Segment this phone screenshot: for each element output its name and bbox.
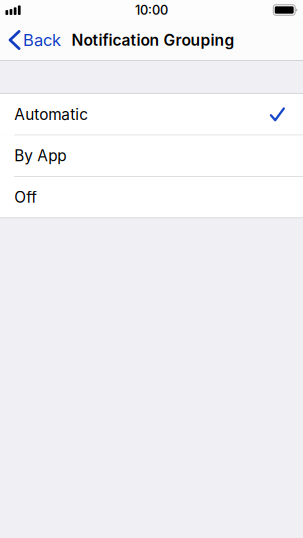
- button[interactable]: Back: [0, 24, 65, 56]
- staticText: Notification Grouping: [72, 31, 235, 49]
- button[interactable]: Off: [0, 177, 303, 218]
- staticText: Automatic: [14, 105, 88, 124]
- button[interactable]: By App: [0, 135, 303, 177]
- staticText: By App: [14, 146, 66, 165]
- staticText: Back: [23, 30, 61, 50]
- button[interactable]: Automatic: [0, 94, 303, 135]
- staticText: 10:00: [135, 2, 168, 18]
- staticText: Off: [14, 188, 37, 206]
